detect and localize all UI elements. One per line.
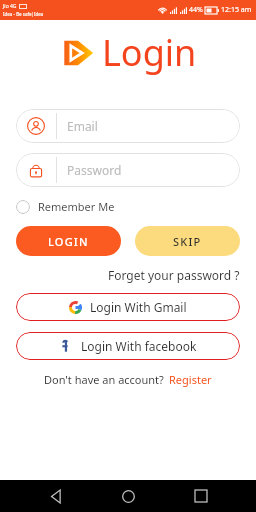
staticText: Register	[169, 372, 212, 387]
button[interactable]: LOGIN	[16, 226, 121, 256]
staticText: Password	[67, 162, 122, 178]
staticText: 44%	[189, 5, 203, 15]
staticText: SKIP	[173, 234, 202, 249]
staticText: Email	[67, 118, 98, 134]
button[interactable]: Home	[111, 480, 145, 512]
button[interactable]: Back	[39, 480, 73, 512]
staticText: Don't have an account?	[44, 372, 164, 387]
staticText: Idea - Be safe|Idea	[3, 11, 44, 17]
staticText: Login With Gmail	[90, 299, 187, 315]
staticText: Login With facebook	[81, 338, 197, 354]
button[interactable]: Register	[169, 372, 212, 387]
staticText: 12:15 am	[221, 5, 252, 15]
staticText: Jio 4G	[3, 3, 17, 10]
button[interactable]: Forget your password ?	[108, 267, 240, 283]
button[interactable]: Login With Gmail	[16, 293, 240, 321]
button[interactable]: Email	[16, 109, 240, 143]
staticText: Remember Me	[38, 199, 115, 214]
staticText: LOGIN	[48, 234, 89, 249]
button[interactable]: Recents	[184, 480, 218, 512]
staticText: Login	[102, 28, 197, 77]
staticText: Forget your password ?	[108, 267, 240, 283]
button[interactable]: SKIP	[135, 226, 240, 256]
button[interactable]: Remember Me	[16, 199, 115, 214]
button[interactable]: Login With facebook	[16, 332, 240, 360]
button[interactable]: Password	[16, 153, 240, 187]
